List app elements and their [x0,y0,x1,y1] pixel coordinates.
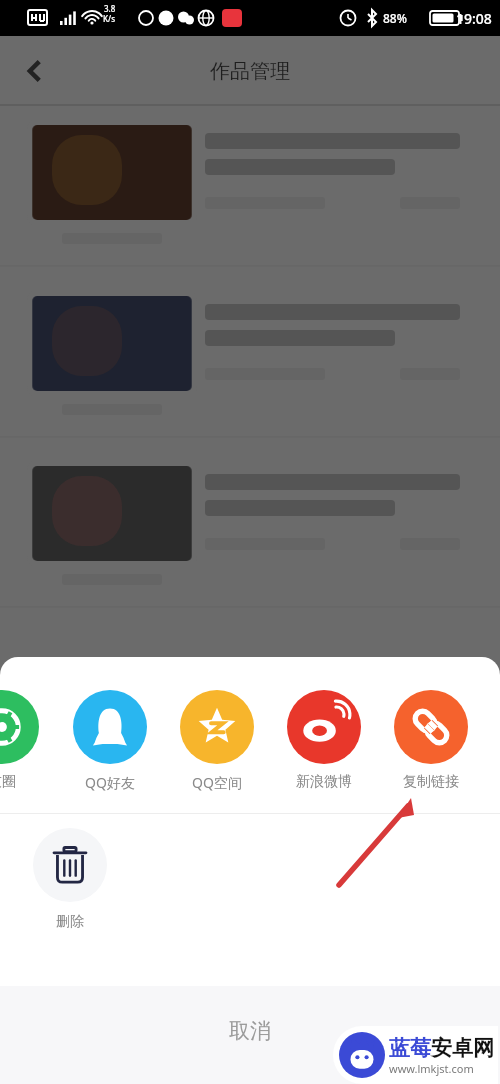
staticText: 作品管理 [210,59,290,84]
button[interactable]: 友圈 [0,690,50,806]
button[interactable]: Back [10,47,58,95]
staticText: 友圈 [0,773,16,791]
staticText: 19:08 [456,9,492,28]
staticText: 取消 [229,1018,271,1044]
staticText: K/s [103,13,116,24]
staticText: www.lmkjst.com [389,1061,474,1076]
staticText: 新浪微博 [296,773,352,791]
staticText: QQ空间 [192,773,242,792]
staticText: 复制链接 [403,773,459,791]
button[interactable]: 新浪微博 [276,690,372,806]
staticText: 删除 [56,913,84,931]
button[interactable]: QQ好友 [62,690,158,806]
button[interactable]: 取消 [0,986,500,1084]
staticText: 88% [383,10,407,26]
button[interactable]: QQ空间 [169,690,265,806]
staticText: 安卓网 [431,1035,494,1061]
button[interactable]: 删除 [22,828,118,958]
staticText: 蓝莓 [389,1035,431,1061]
button[interactable]: 复制链接 [383,690,479,806]
staticText: QQ好友 [85,773,135,792]
staticText: 3.8 [104,3,116,14]
